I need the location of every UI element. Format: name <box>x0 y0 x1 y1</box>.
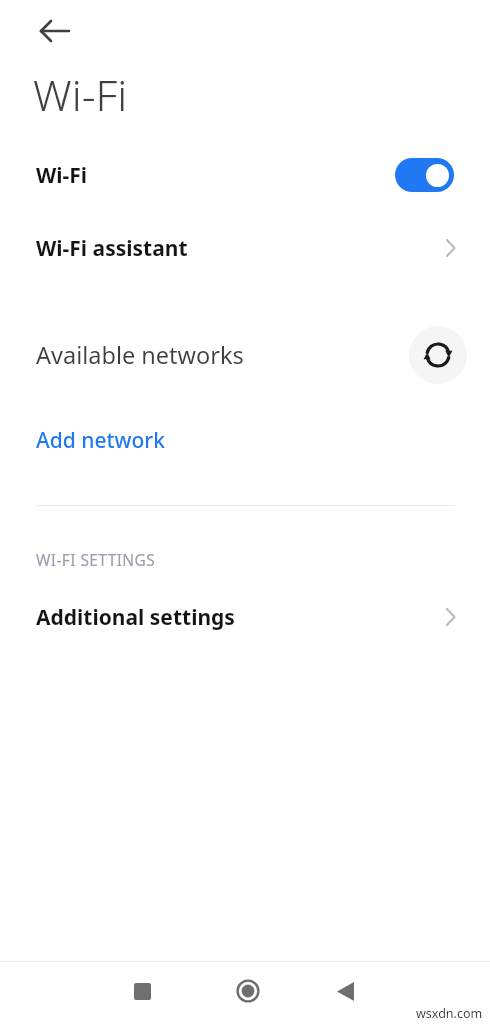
staticText: Additional settings <box>36 603 235 632</box>
button[interactable]: Add network <box>0 412 490 468</box>
staticText: Wi-Fi <box>36 161 88 190</box>
staticText: wsxdn.com <box>416 1005 483 1022</box>
button[interactable] <box>321 967 369 1015</box>
button[interactable] <box>224 967 272 1015</box>
button[interactable] <box>31 7 79 55</box>
staticText: Wi-Fi <box>33 65 128 124</box>
staticText: Wi-Fi assistant <box>36 234 188 263</box>
button[interactable] <box>409 326 467 384</box>
button[interactable]: Wi-Fi assistant <box>0 220 490 276</box>
button[interactable]: Additional settings <box>0 589 490 645</box>
button[interactable] <box>395 158 454 192</box>
staticText: Available networks <box>36 339 244 371</box>
staticText: WI-FI SETTINGS <box>36 549 156 570</box>
staticText: Add network <box>36 426 165 455</box>
button[interactable] <box>118 967 166 1015</box>
